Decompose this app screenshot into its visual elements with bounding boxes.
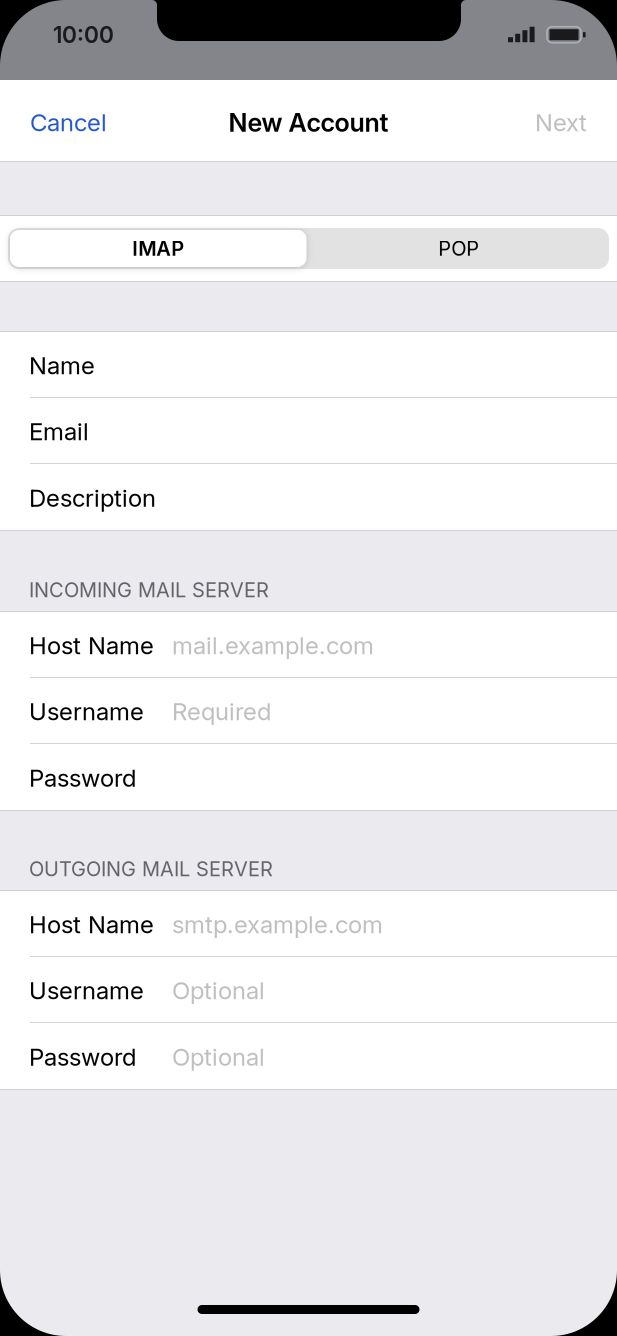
staticText: Description — [29, 483, 156, 512]
button[interactable]: Username — [0, 678, 617, 744]
staticText: Password — [29, 1042, 136, 1071]
staticText: Optional — [172, 1042, 265, 1071]
button[interactable]: POP — [308, 228, 609, 269]
staticText: OUTGOING MAIL SERVER — [29, 857, 273, 881]
button[interactable]: Host Name — [0, 612, 617, 678]
button[interactable]: Password — [0, 1023, 617, 1089]
button[interactable]: Description — [0, 464, 617, 530]
staticText: New Account — [228, 107, 388, 138]
staticText: POP — [438, 236, 479, 261]
staticText: Name — [29, 351, 95, 380]
staticText: smtp.example.com — [172, 910, 383, 939]
staticText: IMAP — [132, 236, 184, 261]
staticText: Email — [29, 417, 89, 446]
staticText: Password — [29, 763, 136, 792]
button[interactable]: Next — [521, 94, 587, 151]
staticText: Username — [29, 697, 144, 726]
staticText: Host Name — [29, 631, 154, 660]
button[interactable]: IMAP — [8, 228, 308, 269]
staticText: INCOMING MAIL SERVER — [29, 578, 269, 602]
button[interactable]: Host Name — [0, 891, 617, 957]
button[interactable]: Name — [0, 332, 617, 398]
staticText: Next — [535, 108, 587, 137]
staticText: mail.example.com — [172, 631, 374, 660]
button[interactable]: Email — [0, 398, 617, 464]
staticText: Username — [29, 976, 144, 1005]
button[interactable]: Username — [0, 957, 617, 1023]
button[interactable]: Password — [0, 744, 617, 810]
button[interactable]: Cancel — [30, 94, 121, 151]
staticText: Host Name — [29, 910, 154, 939]
staticText: Required — [172, 697, 271, 726]
staticText: Optional — [172, 976, 265, 1005]
staticText: Cancel — [30, 108, 107, 137]
staticText: 10:00 — [53, 21, 114, 48]
